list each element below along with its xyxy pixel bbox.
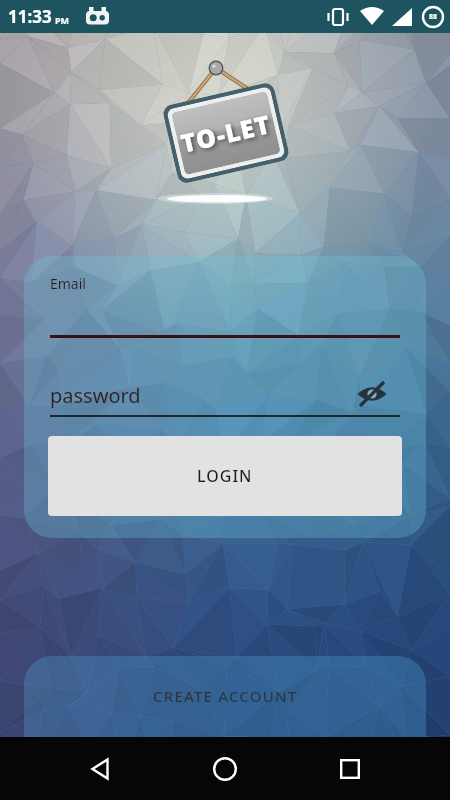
staticText: 11:33 bbox=[8, 5, 52, 28]
button[interactable] bbox=[308, 737, 392, 800]
button[interactable] bbox=[58, 737, 142, 800]
staticText: LOGIN bbox=[197, 465, 253, 487]
button[interactable]: CREATE ACCOUNT bbox=[24, 656, 426, 800]
staticText: password bbox=[50, 382, 141, 409]
staticText: TO-LET bbox=[177, 106, 275, 160]
button[interactable] bbox=[183, 737, 267, 800]
staticText: 88 bbox=[429, 12, 438, 22]
button[interactable] bbox=[356, 378, 388, 410]
staticText: Email bbox=[50, 274, 86, 293]
staticText: PM bbox=[55, 14, 70, 26]
button[interactable]: LOGIN bbox=[48, 436, 402, 516]
staticText: CREATE ACCOUNT bbox=[153, 686, 298, 706]
